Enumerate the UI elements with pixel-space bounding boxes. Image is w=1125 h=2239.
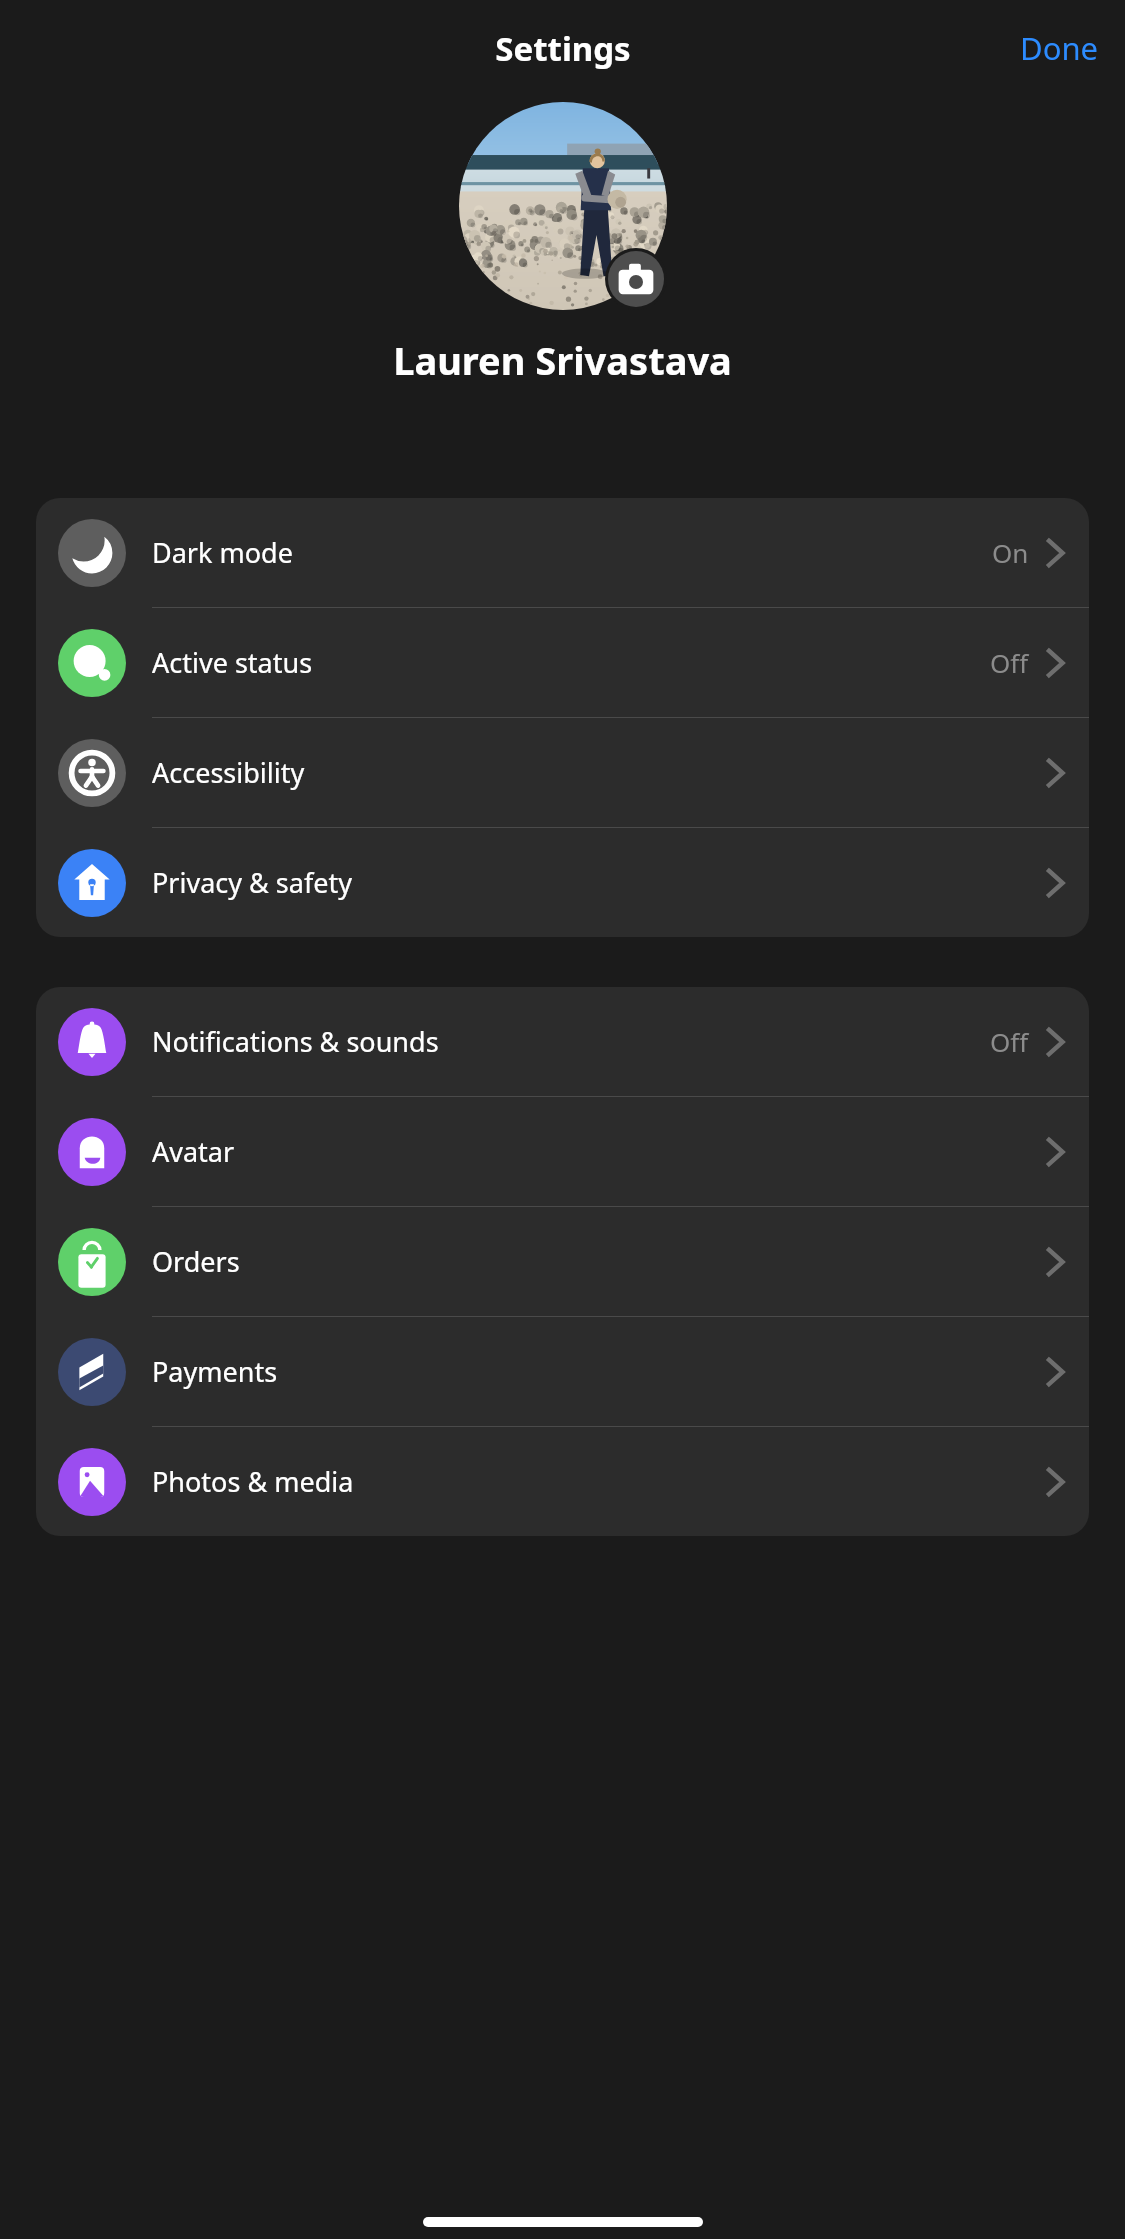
other: Open Notifications & sounds [1045, 1025, 1067, 1059]
staticText: On [992, 535, 1029, 570]
staticText: Off [990, 645, 1029, 680]
staticText: Avatar [152, 1133, 235, 1170]
staticText: Payments [152, 1353, 278, 1390]
other: Open Avatar [1045, 1135, 1067, 1169]
button[interactable]: Orders [36, 1207, 1089, 1316]
staticText: Notifications & sounds [152, 1023, 439, 1060]
button[interactable]: Photos & media [36, 1427, 1089, 1536]
button[interactable]: Done [994, 15, 1125, 81]
staticText: Accessibility [152, 754, 305, 791]
button[interactable]: Privacy & safety [36, 828, 1089, 937]
button[interactable]: Notifications & sounds [36, 987, 1089, 1096]
button[interactable]: Profile photo [459, 102, 667, 310]
staticText: Lauren Srivastava [0, 334, 1125, 386]
other: Open Payments [1045, 1355, 1067, 1389]
staticText: Photos & media [152, 1463, 354, 1500]
button[interactable]: Dark mode [36, 498, 1089, 607]
staticText: Orders [152, 1243, 240, 1280]
other: Open Active status [1045, 646, 1067, 680]
other: Open Orders [1045, 1245, 1067, 1279]
button[interactable]: Change profile photo [608, 251, 664, 307]
other: Open Photos & media [1045, 1465, 1067, 1499]
staticText: Off [990, 1024, 1029, 1059]
staticText: Active status [152, 644, 313, 681]
button[interactable]: Active status [36, 608, 1089, 717]
staticText: Done [1020, 27, 1099, 69]
button[interactable]: Accessibility [36, 718, 1089, 827]
button[interactable]: Payments [36, 1317, 1089, 1426]
staticText: Dark mode [152, 534, 293, 571]
staticText: Privacy & safety [152, 864, 352, 901]
other: Open Privacy & safety [1045, 866, 1067, 900]
other: Open Dark mode [1045, 536, 1067, 570]
other: Open Accessibility [1045, 756, 1067, 790]
button[interactable]: Avatar [36, 1097, 1089, 1206]
staticText: Settings [495, 26, 631, 71]
